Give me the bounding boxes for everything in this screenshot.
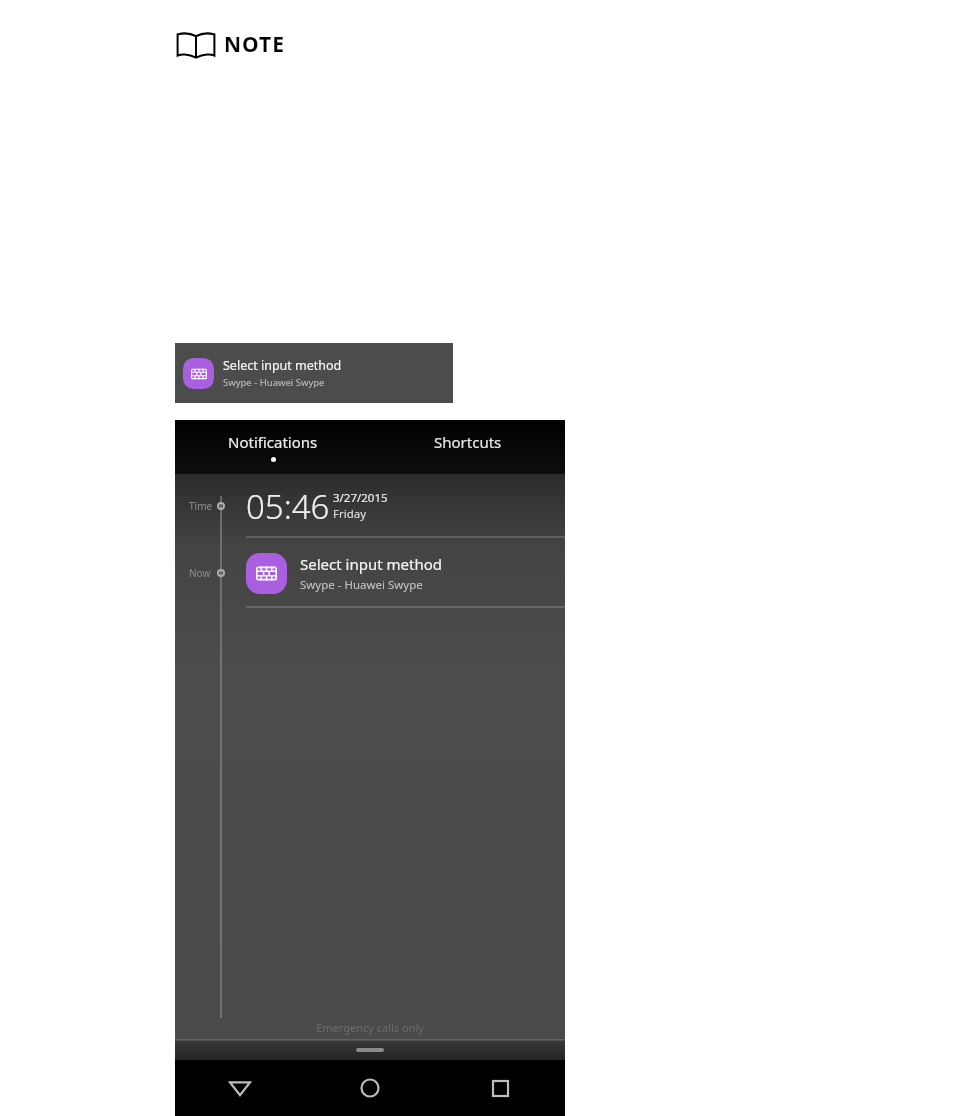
staticText: NOTE bbox=[224, 30, 285, 59]
staticText: 3/27/2015 bbox=[333, 490, 388, 506]
staticText: 05:46 bbox=[246, 484, 330, 529]
staticText: Emergency calls only bbox=[316, 1020, 424, 1035]
button[interactable]: Back bbox=[175, 1060, 305, 1116]
button[interactable]: Select input method bbox=[175, 343, 453, 403]
staticText: Time bbox=[189, 499, 213, 513]
button[interactable]: Shortcuts bbox=[370, 420, 565, 474]
staticText: Select input method bbox=[300, 554, 442, 574]
button[interactable]: Notifications bbox=[175, 420, 370, 474]
button[interactable]: Recent apps bbox=[435, 1060, 565, 1116]
staticText: Notifications bbox=[228, 432, 318, 452]
staticText: Swype - Huawei Swype bbox=[223, 376, 325, 389]
staticText: Select input method bbox=[223, 357, 342, 374]
staticText: Shortcuts bbox=[434, 432, 502, 452]
button[interactable]: Home bbox=[305, 1060, 435, 1116]
staticText: Friday bbox=[333, 506, 367, 522]
button[interactable]: Now bbox=[175, 538, 565, 608]
staticText: Swype - Huawei Swype bbox=[300, 577, 423, 593]
staticText: Now bbox=[189, 566, 211, 580]
